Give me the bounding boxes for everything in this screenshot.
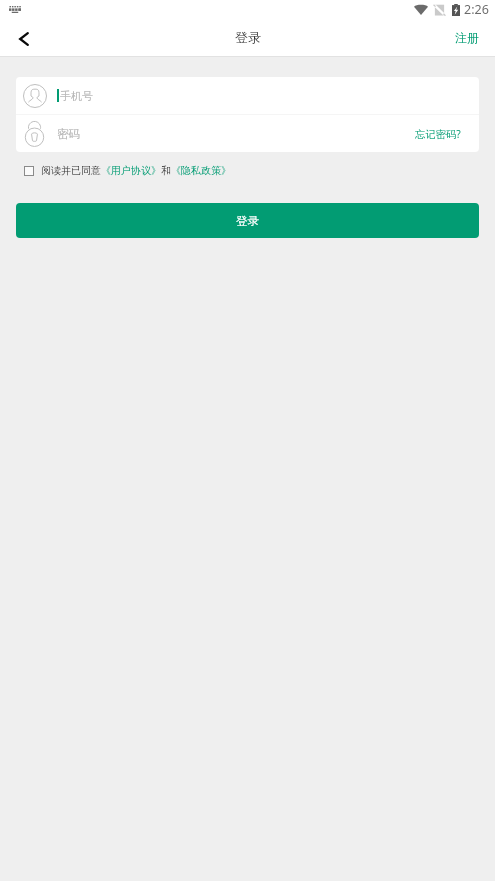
staticText: 登录 (235, 29, 261, 45)
button[interactable]: 注册 (439, 30, 495, 48)
staticText: 阅读并已同意 (41, 164, 101, 177)
staticText: 忘记密码? (415, 127, 461, 141)
button[interactable]: 手机号 (16, 77, 479, 114)
button[interactable]: 密码 (16, 115, 397, 152)
staticText: 《用户协议》 (101, 164, 161, 177)
staticText: 注册 (455, 30, 479, 45)
button[interactable]: Back (0, 22, 47, 56)
button[interactable]: 登录 (16, 203, 479, 238)
staticText: 密码 (57, 127, 80, 141)
staticText: 和 (161, 164, 171, 177)
button[interactable]: 忘记密码? (397, 115, 479, 152)
staticText: 《隐私政策》 (171, 164, 231, 177)
staticText: 手机号 (60, 89, 93, 103)
staticText: 登录 (236, 214, 259, 228)
button[interactable]: 阅读并已同意 (24, 164, 231, 177)
staticText: 2:26 (464, 1, 489, 18)
